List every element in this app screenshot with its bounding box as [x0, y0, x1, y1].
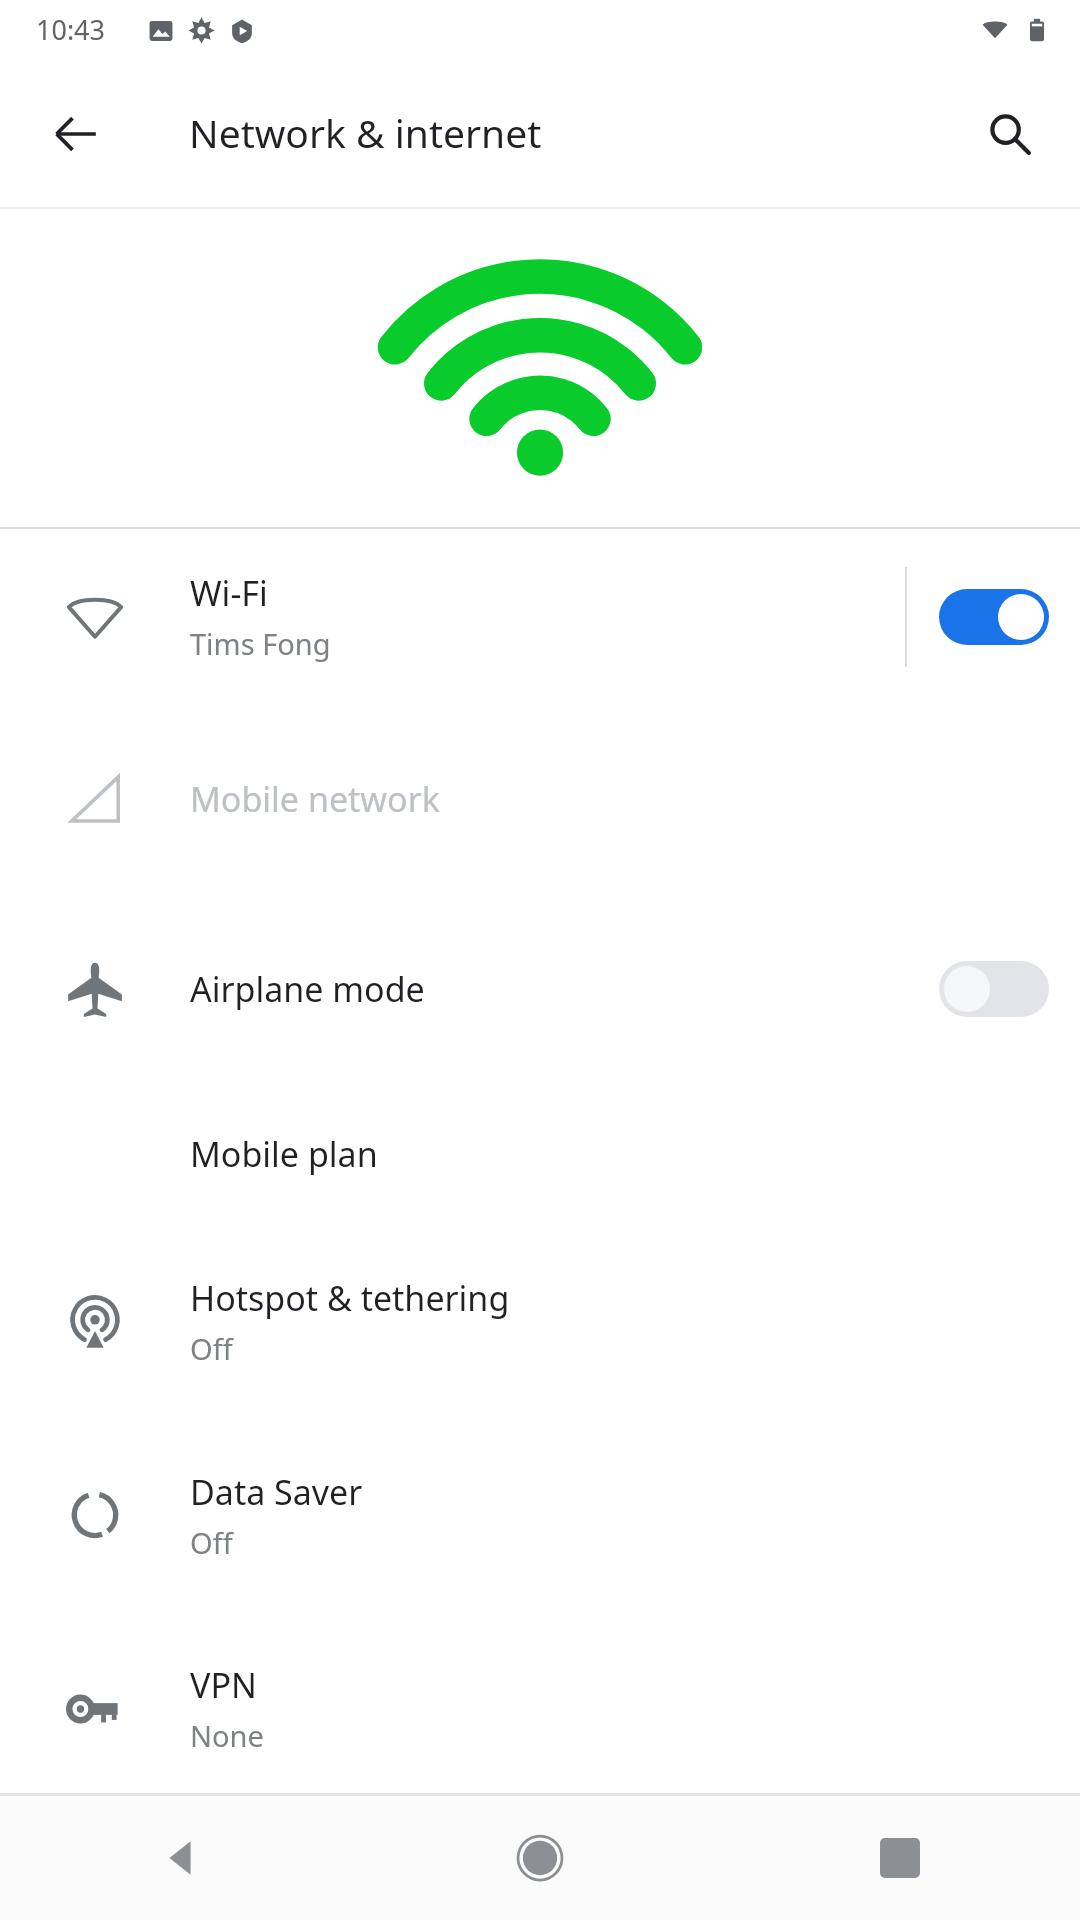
staticText: Mobile network — [190, 776, 440, 822]
button[interactable]: Wi-Fi on — [907, 529, 1080, 704]
button[interactable]: Back — [34, 92, 118, 176]
staticText: Network & internet — [189, 106, 542, 159]
button[interactable]: Wi-Fi — [0, 529, 905, 704]
staticText: None — [190, 1716, 264, 1755]
staticText: Wi-Fi — [190, 570, 268, 616]
button[interactable]: Mobile network — [0, 704, 1080, 894]
staticText: Mobile plan — [190, 1131, 378, 1177]
button[interactable]: Mobile plan — [0, 1084, 1080, 1224]
button[interactable]: Recent apps — [720, 1796, 1080, 1920]
button[interactable]: Search — [968, 92, 1052, 176]
staticText: 10:43 — [36, 11, 106, 48]
staticText: Airplane mode — [190, 966, 907, 1012]
button[interactable]: Back — [0, 1796, 360, 1920]
staticText: Tims Fong — [190, 624, 331, 663]
button[interactable]: Airplane mode — [0, 894, 1080, 1084]
button[interactable]: Private DNS — [0, 1805, 1080, 1920]
staticText: Private DNS — [190, 1816, 380, 1862]
staticText: VPN — [190, 1662, 257, 1708]
staticText: Hotspot & tethering — [190, 1275, 510, 1321]
button[interactable]: Hotspot & tethering — [0, 1224, 1080, 1419]
staticText: Data Saver — [190, 1469, 363, 1515]
button[interactable]: Data Saver — [0, 1419, 1080, 1612]
staticText: Off — [190, 1523, 233, 1562]
button[interactable]: VPN — [0, 1612, 1080, 1805]
button[interactable]: Home — [360, 1796, 720, 1920]
staticText: Off — [190, 1329, 233, 1368]
